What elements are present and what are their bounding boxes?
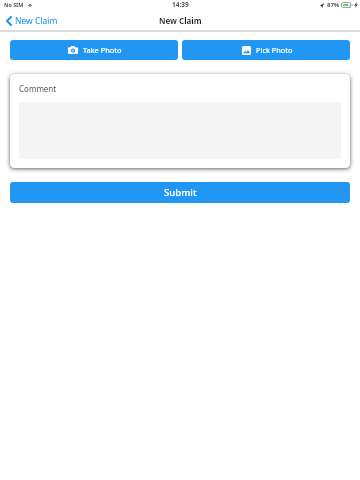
staticText: New Claim (159, 15, 202, 26)
staticText: Submit (164, 186, 197, 199)
staticText: Comment (19, 83, 57, 94)
staticText: No SIM (4, 1, 24, 8)
button[interactable]: New Claim (0, 13, 64, 29)
button[interactable]: Pick Photo (182, 40, 350, 60)
button[interactable]: Take Photo (10, 40, 178, 60)
staticText: New Claim (15, 15, 58, 27)
button[interactable]: Submit (10, 182, 350, 203)
staticText: 87% (327, 1, 340, 9)
staticText: 14:39 (172, 0, 189, 9)
staticText: Pick Photo (256, 45, 293, 55)
staticText: Take Photo (83, 45, 122, 55)
